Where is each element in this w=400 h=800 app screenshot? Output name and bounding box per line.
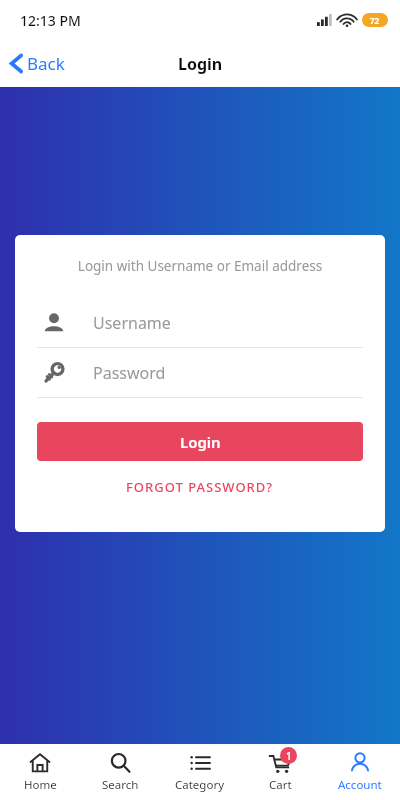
staticText: 12:13 PM: [20, 11, 81, 30]
button[interactable]: Category: [160, 744, 240, 800]
staticText: Username: [93, 312, 171, 334]
button[interactable]: Account: [320, 744, 400, 800]
button[interactable]: 1: [240, 744, 320, 800]
button[interactable]: Search: [80, 744, 160, 800]
staticText: Password: [93, 362, 166, 384]
staticText: 1: [286, 749, 292, 763]
staticText: 72: [370, 15, 380, 26]
button[interactable]: Password: [37, 348, 363, 397]
staticText: Category: [175, 777, 225, 793]
button[interactable]: Home: [0, 744, 80, 800]
button[interactable]: Login: [37, 422, 363, 461]
staticText: Login: [178, 53, 223, 75]
staticText: Cart: [269, 777, 292, 793]
button[interactable]: Back: [0, 46, 75, 81]
staticText: Back: [27, 52, 65, 75]
staticText: FORGOT PASSWORD?: [126, 478, 274, 496]
staticText: Search: [102, 777, 139, 793]
staticText: Login: [180, 432, 221, 452]
button[interactable]: FORGOT PASSWORD?: [120, 472, 280, 502]
staticText: Account: [338, 777, 382, 793]
button[interactable]: Username: [37, 298, 363, 347]
staticText: Login with Username or Email address: [37, 257, 363, 275]
staticText: Home: [24, 777, 57, 793]
